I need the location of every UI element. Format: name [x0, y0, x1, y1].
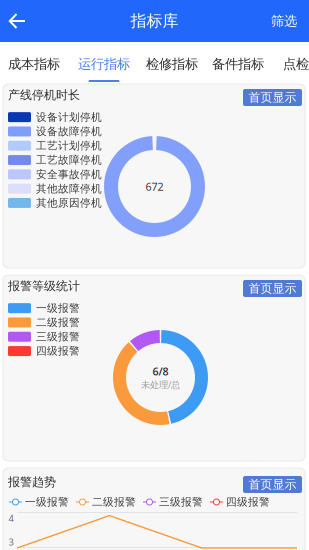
button[interactable]: 运行指标 [77, 42, 131, 82]
staticText: 二级报警 [92, 495, 136, 508]
button[interactable]: 首页显示 [243, 89, 302, 106]
staticText: 4 [8, 512, 13, 524]
staticText: 一级报警 [25, 495, 69, 508]
staticText: 产线停机时长 [8, 88, 80, 102]
staticText: 工艺计划停机 [36, 139, 102, 152]
staticText: 一级报警 [36, 302, 80, 315]
staticText: 检修指标 [146, 56, 198, 72]
staticText: 三级报警 [159, 495, 203, 508]
staticText: 指标库 [130, 11, 178, 31]
button[interactable]: 首页显示 [243, 476, 302, 493]
staticText: 首页显示 [248, 477, 296, 492]
staticText: 设备计划停机 [36, 111, 102, 124]
button[interactable]: 成本指标 [7, 42, 61, 82]
staticText: 其他原因停机 [36, 196, 102, 209]
staticText: 工艺故障停机 [36, 153, 102, 167]
staticText: 672 [145, 179, 163, 194]
staticText: 3 [8, 536, 13, 548]
staticText: 四级报警 [36, 344, 80, 358]
staticText: 筛选 [271, 13, 297, 29]
button[interactable]: 返回 [0, 0, 34, 42]
staticText: 首页显示 [248, 90, 296, 105]
staticText: 设备故障停机 [36, 125, 102, 138]
staticText: 报警趋势 [8, 475, 56, 489]
staticText: 三级报警 [36, 330, 80, 343]
button[interactable]: 首页显示 [243, 280, 302, 297]
staticText: 成本指标 [8, 56, 60, 72]
staticText: 点检指标 [283, 56, 309, 72]
staticText: 6/8 [152, 364, 168, 378]
staticText: 首页显示 [248, 281, 296, 296]
staticText: 安全事故停机 [36, 168, 102, 181]
button[interactable]: 筛选 [271, 0, 309, 42]
staticText: 运行指标 [78, 56, 130, 72]
staticText: 其他故障停机 [36, 182, 102, 195]
button[interactable]: 备件指标 [211, 42, 265, 82]
staticText: 二级报警 [36, 316, 80, 329]
staticText: 四级报警 [226, 495, 270, 508]
staticText: 备件指标 [212, 56, 264, 72]
staticText: 未处理/总 [141, 378, 180, 391]
staticText: 报警等级统计 [8, 279, 80, 293]
button[interactable]: 检修指标 [145, 42, 199, 82]
button[interactable]: 点检指标 [282, 42, 309, 82]
